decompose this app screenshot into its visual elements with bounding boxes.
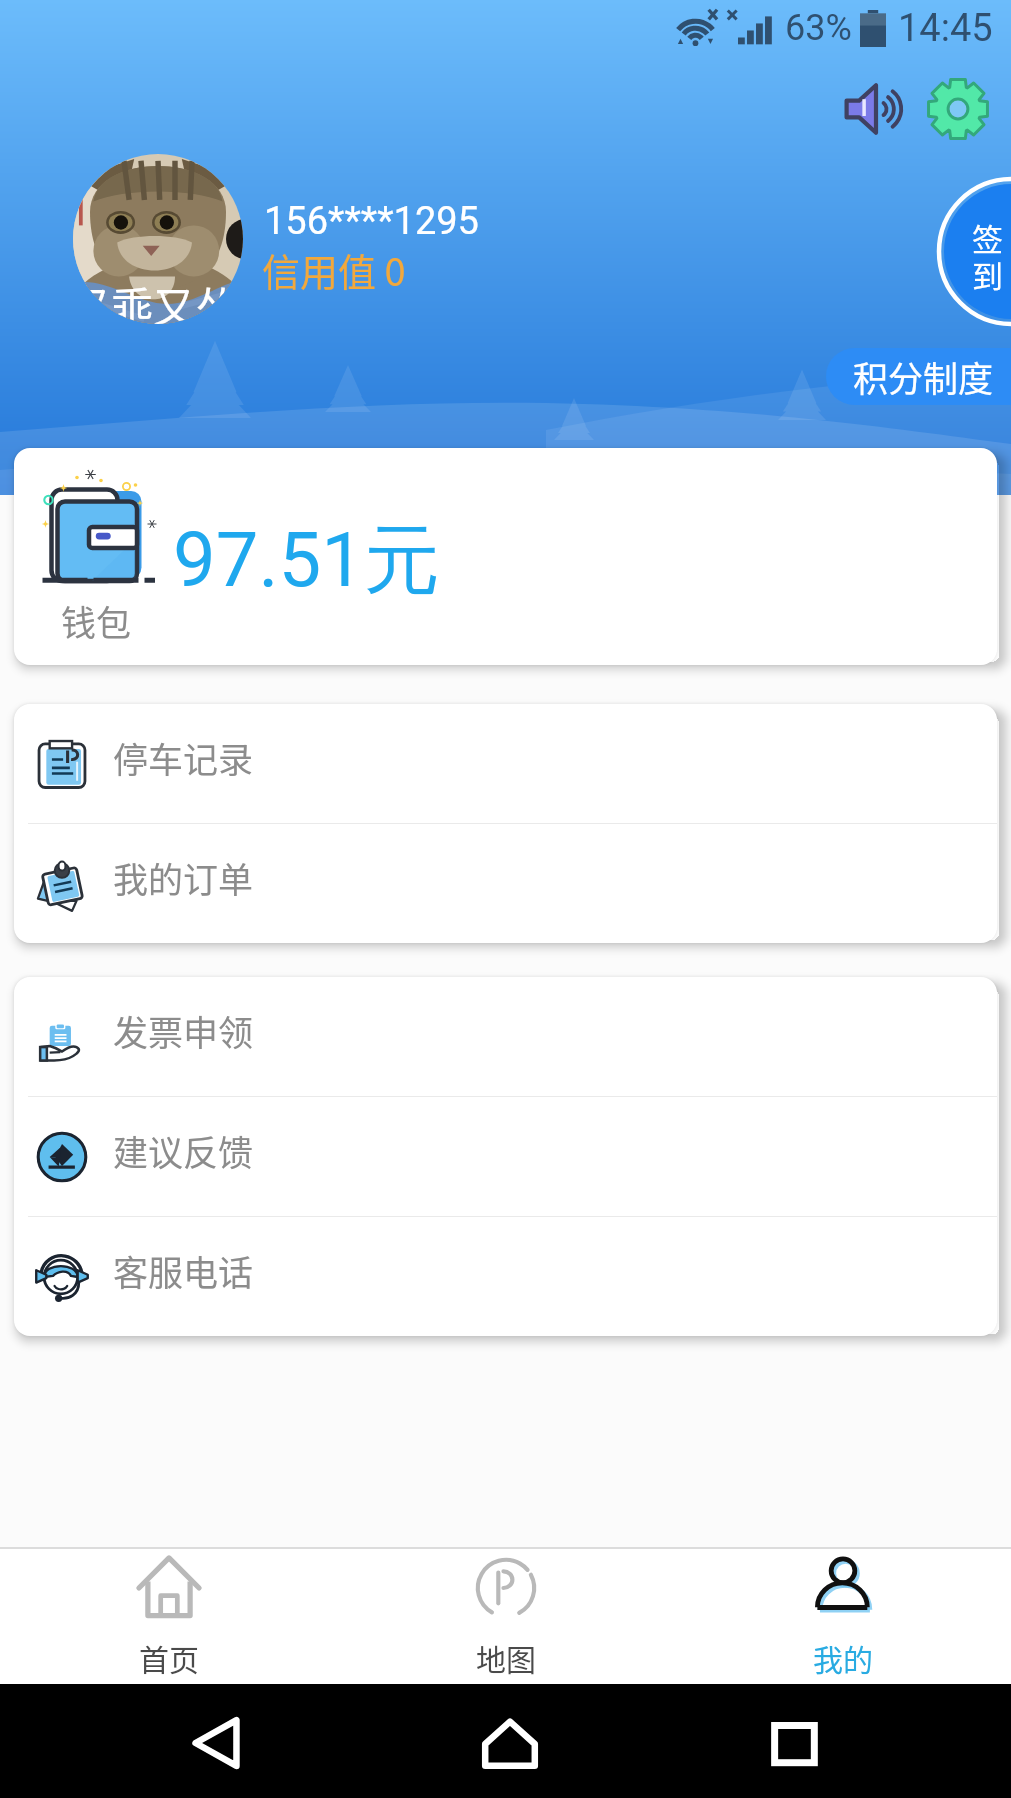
- button[interactable]: Back: [185, 1712, 247, 1774]
- button[interactable]: 首页: [0, 1549, 337, 1684]
- button[interactable]: 我的订单: [14, 824, 997, 943]
- staticText: 14:45: [898, 6, 993, 51]
- staticText: 首页: [139, 1636, 199, 1679]
- staticText: 156****1295: [264, 199, 479, 244]
- button[interactable]: 签到: [939, 179, 1011, 324]
- button[interactable]: 停车记录: [14, 704, 997, 823]
- button[interactable]: Avatar: [73, 154, 243, 324]
- staticText: 我的: [813, 1636, 873, 1679]
- button[interactable]: Settings: [925, 76, 991, 142]
- button[interactable]: 积分制度: [826, 348, 1011, 405]
- button[interactable]: 地图: [337, 1549, 674, 1684]
- staticText: 地图: [476, 1636, 536, 1679]
- button[interactable]: Home: [479, 1713, 541, 1775]
- button[interactable]: 客服电话: [14, 1217, 997, 1336]
- staticText: 63%: [785, 7, 852, 49]
- staticText: 客服电话: [113, 1245, 254, 1296]
- button[interactable]: 97.51元: [14, 448, 997, 665]
- staticText: 我的订单: [113, 852, 254, 903]
- staticText: 信用值 0: [262, 242, 406, 297]
- staticText: 签 到: [972, 215, 1003, 297]
- button[interactable]: Sound: [841, 74, 911, 144]
- staticText: 建议反馈: [113, 1125, 254, 1176]
- staticText: 积分制度: [853, 351, 994, 402]
- staticText: 停车记录: [113, 732, 254, 783]
- button[interactable]: 建议反馈: [14, 1097, 997, 1216]
- staticText: 钱包: [61, 595, 132, 646]
- staticText: 97.51元: [173, 513, 440, 609]
- button[interactable]: 发票申领: [14, 977, 997, 1096]
- button[interactable]: Recents: [761, 1710, 823, 1772]
- button[interactable]: 我的: [674, 1549, 1011, 1684]
- staticText: 又乖又怂: [73, 274, 238, 324]
- staticText: 发票申领: [113, 1005, 254, 1056]
